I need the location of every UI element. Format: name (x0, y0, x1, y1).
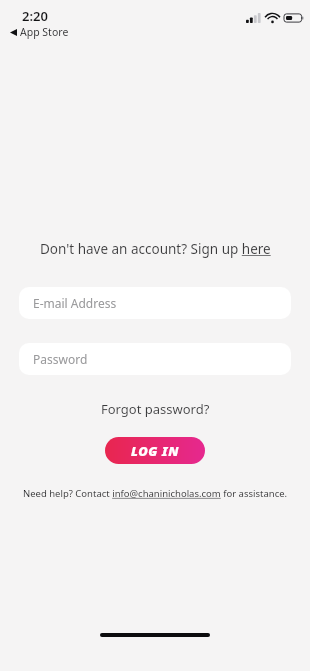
button[interactable]: Back to App Store (10, 25, 69, 39)
button[interactable]: LOG IN (105, 437, 205, 464)
button[interactable]: Don't have an account? Sign up here (34, 238, 277, 260)
staticText: Forgot password? (101, 400, 210, 418)
staticText: E-mail Address (33, 295, 117, 311)
staticText: App Store (20, 25, 69, 39)
staticText: Don't have an account? Sign up here (40, 240, 271, 258)
staticText: LOG IN (131, 442, 180, 460)
staticText: 2:20 (22, 7, 48, 25)
staticText: Need help? Contact info@chaninicholas.co… (23, 487, 288, 500)
staticText: Password (33, 351, 88, 367)
button[interactable]: Forgot password? (93, 397, 218, 421)
button[interactable]: Password (19, 343, 291, 375)
button[interactable]: E-mail Address (19, 287, 291, 319)
